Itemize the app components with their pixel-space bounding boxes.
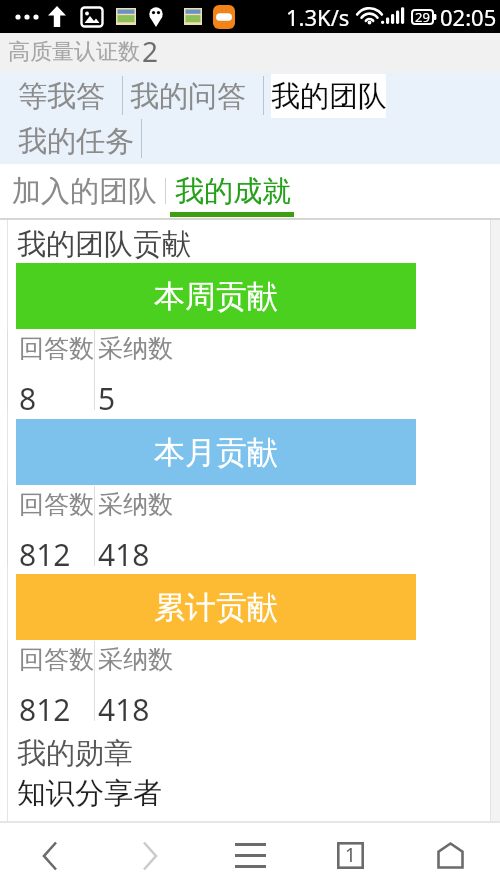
button[interactable]: 我的团队 [271, 74, 386, 118]
staticText: 我的勋章 [17, 735, 133, 772]
staticText: 2 [142, 32, 159, 70]
staticText: 加入的团队 [12, 173, 157, 210]
button[interactable]: 等我答 [17, 74, 106, 118]
staticText: 回答数 [19, 489, 94, 520]
button[interactable]: 本周贡献 [16, 263, 416, 329]
staticText: 采纳数 [98, 333, 173, 364]
button[interactable]: 本月贡献 [16, 419, 416, 485]
staticText: 418 [98, 534, 150, 575]
staticText: 812 [19, 689, 71, 730]
staticText: 我的团队 [271, 78, 386, 115]
staticText: 我的问答 [130, 78, 246, 115]
staticText: 5 [98, 378, 116, 419]
staticText: 本周贡献 [154, 277, 278, 316]
button[interactable]: 累计贡献 [16, 574, 416, 640]
staticText: 回答数 [19, 333, 94, 364]
staticText: 1.3K/s [286, 2, 350, 32]
staticText: 本月贡献 [154, 433, 278, 472]
staticText: 累计贡献 [154, 588, 278, 627]
staticText: 高质量认证数 [8, 38, 140, 66]
button[interactable]: 我的问答 [129, 74, 246, 118]
staticText: 02:05 [440, 2, 497, 32]
staticText: 知识分享者 [17, 775, 162, 812]
staticText: 29 [415, 8, 430, 26]
button[interactable]: Menu [200, 823, 300, 888]
button[interactable]: Tabs [300, 823, 400, 888]
staticText: 采纳数 [98, 489, 173, 520]
staticText: 我的成就 [175, 173, 291, 210]
button[interactable]: Forward [100, 823, 200, 888]
staticText: 812 [19, 534, 71, 575]
button[interactable]: 我的任务 [17, 119, 134, 163]
staticText: 回答数 [19, 644, 94, 675]
staticText: 1 [345, 842, 356, 868]
button[interactable]: 加入的团队 [12, 172, 157, 210]
staticText: 我的团队贡献 [17, 226, 191, 263]
button[interactable]: Back [0, 823, 100, 888]
staticText: 采纳数 [98, 644, 173, 675]
staticText: 418 [98, 689, 150, 730]
button[interactable]: 我的成就 [175, 172, 291, 210]
staticText: 等我答 [18, 78, 105, 115]
staticText: 我的任务 [18, 123, 134, 160]
button[interactable]: Home [400, 823, 500, 888]
staticText: 8 [19, 378, 37, 419]
